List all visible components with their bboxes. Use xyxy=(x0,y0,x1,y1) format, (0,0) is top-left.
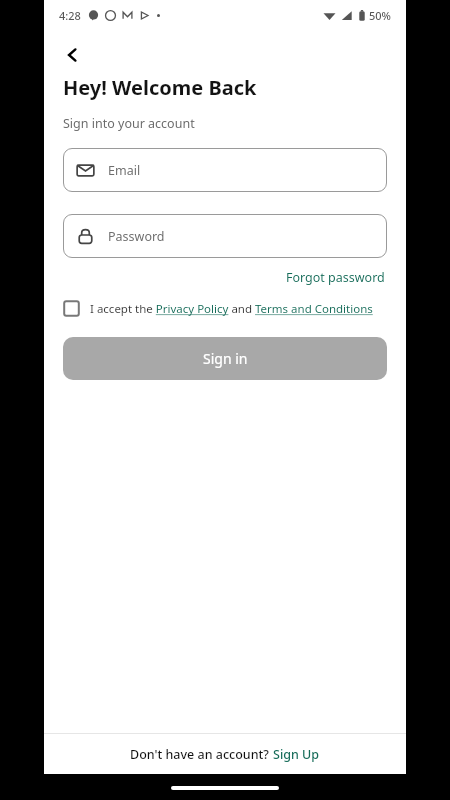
staticText: I accept the Privacy Policy and Terms an… xyxy=(90,301,373,317)
button[interactable]: Forgot password xyxy=(284,267,387,288)
staticText: Hey! Welcome Back xyxy=(63,74,257,101)
staticText: Sign in xyxy=(203,349,248,368)
button[interactable]: I accept the Privacy Policy and Terms an… xyxy=(63,298,387,319)
staticText: Don't have an account? xyxy=(130,746,273,763)
staticText: Email xyxy=(108,162,141,179)
staticText: 4:28 xyxy=(59,8,81,23)
staticText: Sign Up xyxy=(273,746,320,763)
staticText: Forgot password xyxy=(286,269,385,286)
button[interactable]: Password xyxy=(63,214,387,258)
button[interactable]: Don't have an account? xyxy=(130,746,320,763)
button[interactable]: Sign in xyxy=(63,337,387,380)
staticText: Password xyxy=(108,228,165,245)
staticText: Sign into your account xyxy=(63,115,195,132)
staticText: 50% xyxy=(369,8,391,23)
button[interactable]: Email xyxy=(63,148,387,192)
button[interactable]: Back xyxy=(63,40,93,70)
